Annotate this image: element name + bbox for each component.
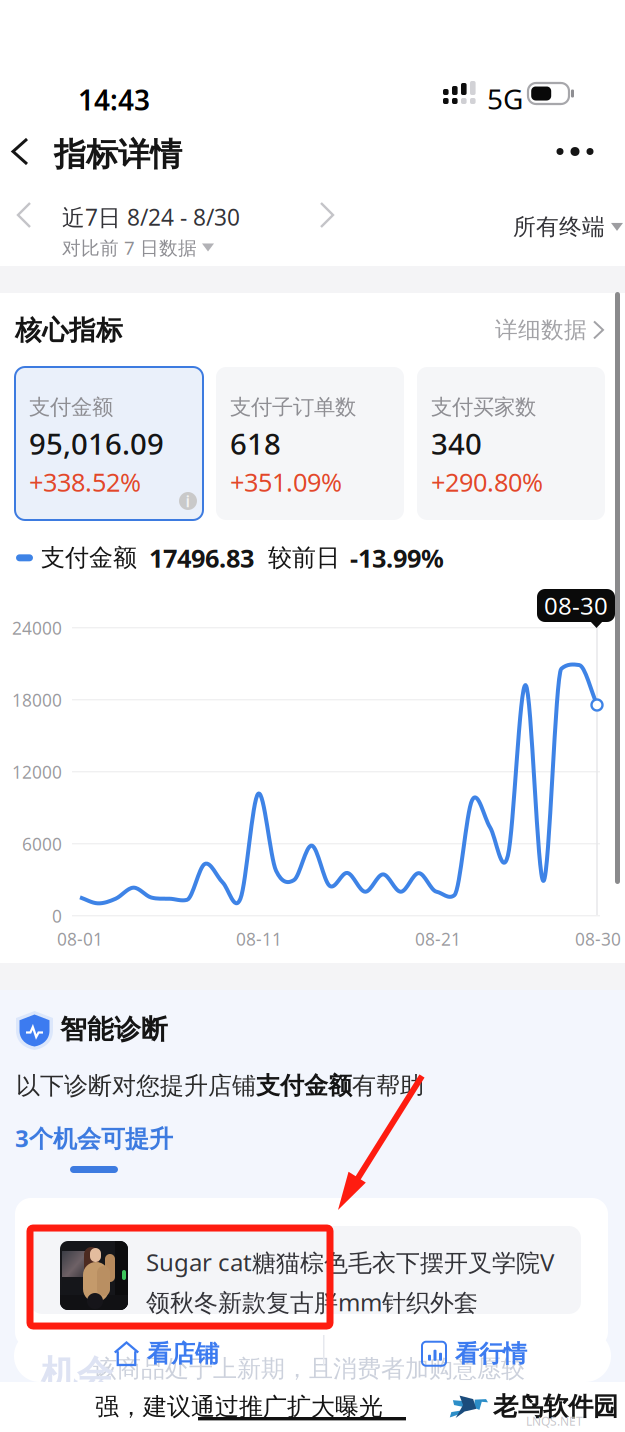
staticText: 看店铺 bbox=[147, 1339, 219, 1368]
staticText: 0 bbox=[52, 904, 62, 927]
staticText: 详细数据 bbox=[495, 316, 587, 344]
staticText: 指标详情 bbox=[54, 135, 182, 174]
button[interactable]: 支付买家数 bbox=[417, 367, 605, 520]
button[interactable]: 所有终端 bbox=[503, 197, 625, 257]
button[interactable]: Back bbox=[0, 130, 43, 173]
staticText: 核心指标 bbox=[15, 314, 123, 347]
staticText: -13.99% bbox=[350, 541, 444, 575]
staticText: 14:43 bbox=[78, 81, 150, 118]
button[interactable]: 支付金额 bbox=[15, 367, 203, 520]
staticText: 有帮助 bbox=[352, 1071, 424, 1100]
staticText: 老鸟软件园 bbox=[493, 1391, 618, 1422]
staticText: 领秋冬新款复古胖mm针织外套 bbox=[146, 1286, 478, 1318]
button[interactable]: More options bbox=[538, 130, 612, 173]
staticText: 以下诊断对您提升店铺 bbox=[16, 1071, 256, 1100]
staticText: 340 bbox=[431, 424, 482, 463]
button[interactable]: 3个机会可提升 bbox=[0, 1120, 188, 1177]
staticText: 17496.83 bbox=[149, 541, 254, 575]
staticText: 08-30 bbox=[544, 590, 608, 621]
staticText: 12000 bbox=[12, 760, 62, 783]
staticText: 机会 bbox=[41, 1352, 113, 1396]
staticText: +338.52% bbox=[29, 465, 141, 499]
staticText: 618 bbox=[230, 424, 281, 463]
staticText: 08-30 bbox=[575, 927, 621, 950]
staticText: 5G bbox=[487, 80, 523, 117]
staticText: 较前日 bbox=[268, 543, 340, 573]
staticText: 对比前 7 日数据 bbox=[62, 235, 197, 260]
staticText: +290.80% bbox=[431, 465, 543, 499]
staticText: 18000 bbox=[12, 688, 62, 711]
button[interactable]: 看店铺 bbox=[106, 1334, 227, 1373]
staticText: Sugar cat糖猫棕色毛衣下摆开叉学院V bbox=[146, 1246, 554, 1278]
button[interactable]: 支付子订单数 bbox=[216, 367, 404, 520]
staticText: LNQS.NET bbox=[526, 1413, 583, 1429]
staticText: +351.09% bbox=[230, 465, 342, 499]
staticText: 智能诊断 bbox=[60, 1013, 168, 1046]
button[interactable]: Next period bbox=[303, 189, 351, 241]
staticText: 强，建议通过推广扩大曝光 bbox=[95, 1392, 383, 1421]
staticText: 支付金额 bbox=[41, 543, 137, 573]
staticText: 看行情 bbox=[455, 1339, 527, 1368]
button[interactable]: 看行情 bbox=[414, 1334, 535, 1373]
button[interactable]: 详细数据 bbox=[483, 308, 617, 352]
staticText: 支付买家数 bbox=[431, 394, 536, 420]
staticText: 支付金额 bbox=[256, 1071, 352, 1100]
staticText: 08-21 bbox=[415, 927, 461, 950]
staticText: 所有终端 bbox=[513, 213, 605, 241]
staticText: 支付子订单数 bbox=[230, 394, 356, 420]
staticText: 该商品处于上新期，且消费者加购意愿较 bbox=[93, 1354, 525, 1383]
staticText: 3个机会可提升 bbox=[15, 1122, 173, 1154]
staticText: 08-11 bbox=[236, 927, 282, 950]
staticText: 08-01 bbox=[57, 927, 103, 950]
staticText: 支付金额 bbox=[29, 394, 113, 420]
button[interactable]: Previous period bbox=[0, 189, 48, 241]
staticText: 24000 bbox=[12, 616, 62, 639]
staticText: 6000 bbox=[22, 832, 62, 855]
staticText: 近7日 8/24 - 8/30 bbox=[62, 202, 240, 232]
staticText: i bbox=[185, 490, 190, 512]
staticText: 95,016.09 bbox=[29, 424, 164, 463]
